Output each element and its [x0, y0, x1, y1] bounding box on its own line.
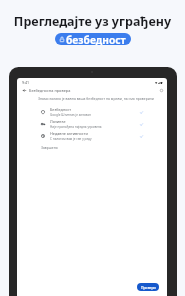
staticText: Безбедносна провера [29, 88, 71, 93]
staticText: Завршено [41, 145, 58, 150]
staticText: Безбедност [50, 107, 72, 112]
staticText: Знамо колико је важна ваша безбедност на… [38, 96, 161, 101]
button[interactable]: Безбедност [17, 106, 167, 118]
staticText: Прегледајте уз уграђену [0, 13, 185, 30]
button[interactable]: Help [158, 87, 165, 94]
other: Security lock [58, 35, 66, 43]
button[interactable]: Недавне активности [17, 130, 167, 142]
staticText: Лозинке [50, 119, 66, 124]
staticText: безбедност [66, 33, 126, 45]
staticText: 9:41 [22, 80, 30, 85]
staticText: Недавне активности [50, 131, 88, 136]
staticText: Провери [141, 285, 156, 290]
button[interactable]: Лозинке [17, 118, 167, 130]
button[interactable]: Security lock [55, 33, 131, 45]
button[interactable]: Провери [137, 283, 159, 291]
button[interactable]: Back [21, 87, 28, 94]
staticText: Није пронађена ниједна угрожена [50, 125, 102, 129]
staticText: С налогом вам је све у реду [50, 137, 92, 141]
staticText: Google Штитник је активан [50, 113, 91, 117]
